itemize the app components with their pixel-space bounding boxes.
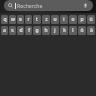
button[interactable]: h [42, 26, 50, 35]
button[interactable]: j [51, 26, 59, 35]
button[interactable]: f [25, 26, 32, 35]
staticText: l [72, 27, 74, 34]
staticText: s [11, 27, 14, 34]
staticText: z [45, 16, 48, 23]
staticText: w [11, 16, 15, 23]
button[interactable]: o [69, 15, 77, 24]
button[interactable]: Voice search [82, 2, 89, 9]
button[interactable]: s [9, 26, 16, 35]
staticText: ö [80, 27, 84, 34]
button[interactable]: i [60, 15, 68, 24]
button[interactable]: Recherche [4, 0, 93, 11]
staticText: g [35, 27, 39, 34]
button[interactable]: d [17, 26, 24, 35]
button[interactable]: a [1, 26, 8, 35]
staticText: Recherche [17, 2, 82, 9]
button[interactable]: l [69, 26, 77, 35]
staticText: t [36, 16, 38, 23]
button[interactable]: u [51, 15, 59, 24]
button[interactable]: e [17, 15, 24, 24]
staticText: f [28, 27, 30, 34]
staticText: h [44, 27, 48, 34]
staticText: Unterhalte dich mit mir über alle [24, 1, 73, 5]
button[interactable]: ö [78, 26, 86, 35]
button[interactable]: g [33, 26, 41, 35]
staticText: d [19, 27, 23, 34]
button[interactable]: q [1, 15, 8, 24]
button[interactable]: ü [87, 15, 95, 24]
staticText: q [3, 16, 7, 23]
staticText: ä [90, 27, 93, 34]
button[interactable]: p [78, 15, 86, 24]
staticText: u [53, 16, 57, 23]
staticText: k [63, 27, 66, 34]
staticText: p [80, 16, 84, 23]
staticText: r [27, 16, 30, 23]
button[interactable]: w [9, 15, 16, 24]
staticText: j [54, 27, 56, 34]
button[interactable]: t [33, 15, 41, 24]
button[interactable]: r [25, 15, 32, 24]
staticText: a [3, 27, 6, 34]
staticText: i [63, 16, 65, 23]
staticText: o [71, 16, 75, 23]
button[interactable]: k [60, 26, 68, 35]
staticText: ü [89, 16, 93, 23]
staticText: e [19, 16, 22, 23]
button[interactable]: z [42, 15, 50, 24]
button[interactable]: ä [87, 26, 95, 35]
